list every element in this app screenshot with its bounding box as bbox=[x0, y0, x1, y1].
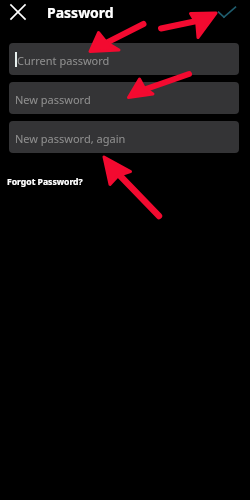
button[interactable]: Forgot Password? bbox=[7, 176, 83, 188]
button[interactable]: New password bbox=[9, 82, 239, 114]
staticText: Forgot Password? bbox=[7, 176, 83, 188]
button[interactable]: Current password bbox=[9, 43, 239, 75]
staticText: New password bbox=[15, 92, 91, 107]
staticText: Current password bbox=[17, 53, 110, 68]
button[interactable]: Save bbox=[215, 1, 239, 25]
staticText: New password, again bbox=[15, 131, 126, 146]
button[interactable]: New password, again bbox=[9, 121, 239, 153]
staticText: Password bbox=[47, 3, 114, 22]
button[interactable]: Close bbox=[6, 0, 30, 24]
